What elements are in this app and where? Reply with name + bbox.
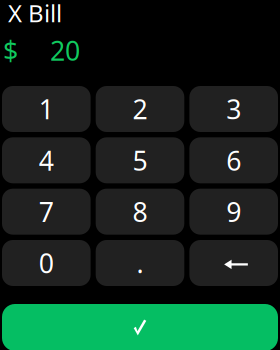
staticText: 2: [132, 91, 147, 127]
staticText: X Bill: [8, 0, 62, 29]
button[interactable]: 4: [2, 137, 91, 183]
staticText: 4: [39, 143, 54, 178]
button[interactable]: 1: [2, 86, 91, 132]
button[interactable]: 9: [189, 189, 278, 235]
staticText: $: [3, 33, 18, 68]
staticText: 5: [132, 143, 147, 178]
staticText: 7: [39, 194, 54, 229]
button[interactable]: 8: [96, 189, 184, 235]
staticText: 0: [39, 245, 54, 281]
staticText: 9: [226, 194, 241, 229]
button[interactable]: 2: [96, 86, 184, 132]
button[interactable]: 0: [2, 240, 91, 286]
staticText: 20: [50, 33, 80, 68]
button[interactable]: .: [96, 240, 184, 286]
button[interactable]: 3: [189, 86, 278, 132]
button[interactable]: Delete: [189, 240, 278, 286]
button[interactable]: 7: [2, 189, 91, 235]
staticText: 6: [226, 143, 241, 178]
staticText: 1: [39, 91, 54, 127]
staticText: 3: [226, 91, 241, 127]
button[interactable]: 6: [189, 137, 278, 183]
button[interactable]: 5: [96, 137, 184, 183]
button[interactable]: Confirm: [2, 304, 278, 350]
staticText: 8: [132, 194, 147, 229]
staticText: .: [136, 245, 143, 281]
